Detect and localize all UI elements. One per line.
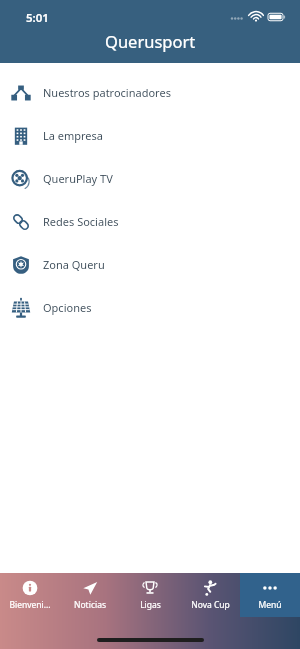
button[interactable]: Noticias xyxy=(60,573,120,617)
staticText: QueruPlay TV xyxy=(43,171,113,186)
staticText: Opciones xyxy=(43,300,92,315)
staticText: Noticias xyxy=(74,599,106,611)
staticText: Nova Cup xyxy=(191,599,230,611)
staticText: Nuestros patrocinadores xyxy=(43,85,171,100)
button[interactable]: Redes Sociales xyxy=(0,200,300,243)
staticText: Menú xyxy=(258,599,282,611)
button[interactable]: La empresa xyxy=(0,114,300,157)
staticText: Zona Queru xyxy=(43,257,105,272)
staticText: Ligas xyxy=(140,599,161,611)
button[interactable]: Bienveni... xyxy=(0,573,60,617)
staticText: La empresa xyxy=(43,128,104,143)
staticText: Bienveni... xyxy=(9,599,51,611)
staticText: Redes Sociales xyxy=(43,214,119,229)
button[interactable]: Opciones xyxy=(0,286,300,329)
button[interactable]: Nova Cup xyxy=(180,573,240,617)
staticText: 5:01 xyxy=(26,10,49,26)
button[interactable]: Menú xyxy=(240,573,300,617)
button[interactable]: Nuestros patrocinadores xyxy=(0,71,300,114)
button[interactable]: Zona Queru xyxy=(0,243,300,286)
button[interactable]: Ligas xyxy=(120,573,180,617)
staticText: Querusport xyxy=(105,30,196,52)
button[interactable]: QueruPlay TV xyxy=(0,157,300,200)
